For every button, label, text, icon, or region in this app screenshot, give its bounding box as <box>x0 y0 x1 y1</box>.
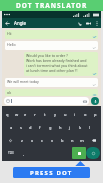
button[interactable]: ok <box>5 89 98 96</box>
staticText: We will meet today <box>7 79 39 84</box>
button[interactable]: Enter <box>86 147 100 159</box>
staticText: w <box>15 112 19 117</box>
staticText: n <box>71 138 74 143</box>
staticText: q <box>6 112 9 117</box>
button[interactable]: o <box>80 108 90 120</box>
button[interactable]: p <box>90 108 100 120</box>
staticText: j <box>69 125 71 130</box>
staticText: e <box>24 112 27 117</box>
button[interactable]: m <box>77 134 87 146</box>
staticText: PRESS DOT <box>30 169 73 177</box>
button[interactable]: PRESS DOT <box>13 167 90 178</box>
staticText: z <box>21 138 23 143</box>
staticText: b <box>61 138 64 143</box>
staticText: f <box>39 125 41 130</box>
button[interactable]: Dot key <box>72 147 86 159</box>
staticText: at lunch time and other plan ?! <box>26 68 78 73</box>
staticText: i <box>74 112 76 117</box>
button[interactable]: t <box>40 108 50 120</box>
button[interactable]: v <box>47 134 57 146</box>
staticText: x <box>31 138 34 143</box>
staticText: d <box>29 125 32 130</box>
button[interactable]: Hii <box>5 30 98 39</box>
staticText: h <box>59 125 62 130</box>
staticText: c <box>41 138 43 143</box>
button[interactable]: d <box>25 121 35 133</box>
button[interactable]: g <box>45 121 55 133</box>
staticText: i can't torment what you think about <box>26 63 88 68</box>
button[interactable]: x <box>27 134 37 146</box>
button[interactable]: Send voice message <box>91 97 99 105</box>
button[interactable]: f <box>35 121 45 133</box>
button[interactable]: a <box>7 121 16 133</box>
button[interactable]: n <box>67 134 77 146</box>
button[interactable]: Back <box>3 19 11 27</box>
button[interactable] <box>4 97 89 105</box>
staticText: t <box>44 112 46 117</box>
staticText: g <box>49 125 52 130</box>
button[interactable]: r <box>30 108 40 120</box>
button[interactable]: q <box>3 108 12 120</box>
button[interactable]: Would you like to order ? <box>24 52 98 76</box>
button[interactable]: y <box>50 108 60 120</box>
button[interactable]: z <box>17 134 27 146</box>
button[interactable]: e <box>21 108 30 120</box>
button[interactable]: u <box>60 108 70 120</box>
staticText: Work has been already finished and <box>26 58 87 63</box>
button[interactable]: Video call <box>84 19 93 28</box>
button[interactable]: Call <box>75 19 84 28</box>
staticText: ok <box>7 90 12 95</box>
button[interactable]: , <box>19 147 29 159</box>
button[interactable]: i <box>70 108 80 120</box>
staticText: a <box>10 125 13 130</box>
button[interactable]: ?123 <box>3 147 19 159</box>
staticText: s <box>20 125 22 130</box>
button[interactable]: b <box>57 134 67 146</box>
button[interactable]: w <box>12 108 21 120</box>
button[interactable]: We will meet today <box>5 78 98 87</box>
button[interactable]: Hello <box>5 41 98 50</box>
staticText: o <box>84 112 87 117</box>
button[interactable]: j <box>65 121 75 133</box>
button[interactable]: s <box>16 121 25 133</box>
staticText: Would you like to order ? <box>26 53 68 58</box>
staticText: l <box>89 125 91 130</box>
button[interactable]: k <box>75 121 85 133</box>
staticText: Hii <box>7 31 12 36</box>
button[interactable]: Backspace <box>87 134 100 146</box>
button[interactable]: c <box>37 134 47 146</box>
staticText: u <box>64 112 67 117</box>
button[interactable]: l <box>85 121 95 133</box>
button[interactable]: More options <box>93 20 100 27</box>
staticText: k <box>79 125 82 130</box>
button[interactable]: Shift <box>3 134 17 146</box>
staticText: , <box>23 151 25 156</box>
staticText: Angie <box>14 20 27 26</box>
staticText: Hello <box>7 42 16 47</box>
button[interactable]: h <box>55 121 65 133</box>
staticText: y <box>54 112 57 117</box>
staticText: r <box>34 112 36 117</box>
staticText: v <box>51 138 54 143</box>
staticText: DOT TRANSLATOR <box>16 1 88 10</box>
staticText: ?123 <box>8 151 14 155</box>
staticText: m <box>80 138 84 143</box>
staticText: p <box>94 112 97 117</box>
